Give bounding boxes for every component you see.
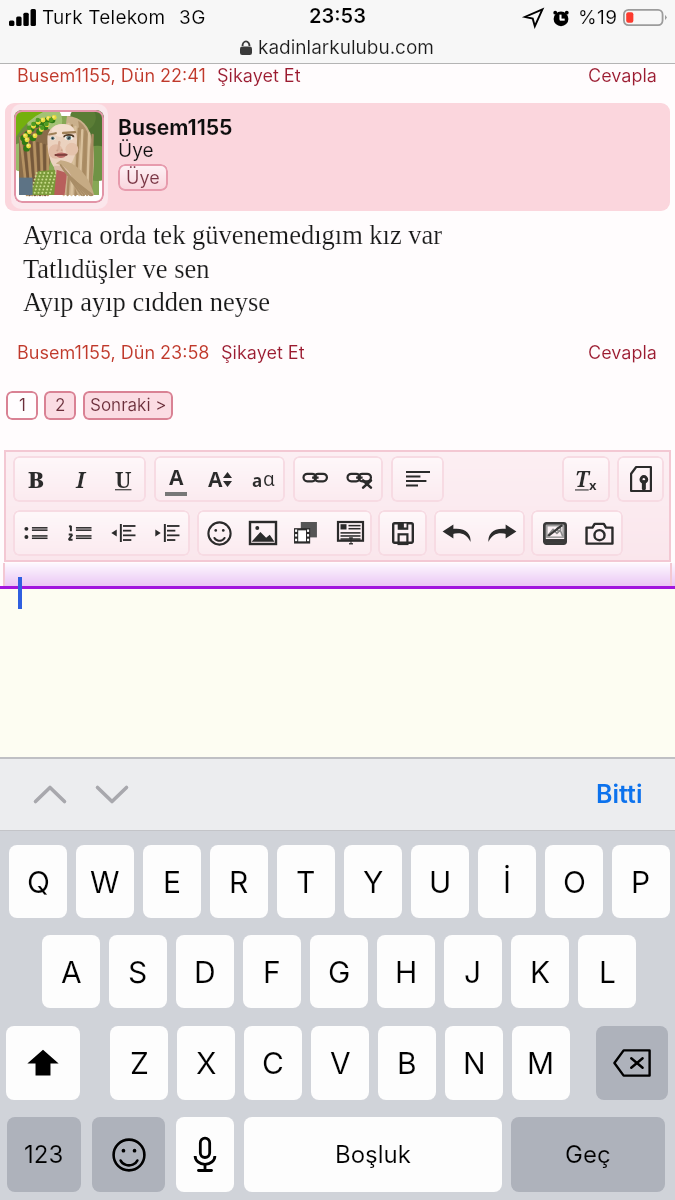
staticText: A <box>208 465 223 494</box>
staticText: V <box>330 1045 351 1081</box>
button[interactable]: D <box>176 935 234 1008</box>
button[interactable]: Shift <box>6 1026 80 1100</box>
button[interactable]: Emoji <box>92 1117 165 1192</box>
button[interactable]: Underline <box>102 457 144 501</box>
button[interactable]: U <box>411 845 469 918</box>
button[interactable]: S <box>109 935 167 1008</box>
button[interactable]: Save <box>382 511 424 555</box>
button[interactable]: E <box>143 845 201 918</box>
button[interactable]: Italic <box>59 457 101 501</box>
button[interactable]: X <box>177 1026 235 1100</box>
button[interactable]: Bullet list <box>15 511 57 555</box>
button[interactable]: L <box>578 935 636 1008</box>
button[interactable]: Undo <box>436 511 478 555</box>
button[interactable]: 123 <box>7 1117 81 1192</box>
staticText: L <box>599 954 616 990</box>
button[interactable]: Busem1155 <box>5 103 670 211</box>
button[interactable]: 2 <box>44 391 76 420</box>
staticText: α <box>263 466 275 492</box>
button[interactable]: Font color <box>155 457 197 501</box>
button[interactable]: Z <box>110 1026 168 1100</box>
staticText: X <box>196 1045 217 1081</box>
button[interactable]: Camera <box>578 511 620 555</box>
button[interactable]: Emoji <box>198 511 240 555</box>
button[interactable]: F <box>243 935 301 1008</box>
staticText: Sonraki > <box>90 395 167 416</box>
button[interactable]: H <box>377 935 435 1008</box>
staticText: İ <box>503 864 512 900</box>
staticText: R <box>229 864 249 900</box>
button[interactable]: Next field <box>87 769 137 819</box>
button[interactable]: K <box>511 935 569 1008</box>
staticText: W <box>90 864 120 900</box>
button[interactable]: Clear formatting <box>565 457 607 501</box>
button[interactable]: Insert link <box>295 457 337 501</box>
button[interactable]: İ <box>478 845 536 918</box>
button[interactable]: 1 <box>6 391 38 420</box>
button[interactable]: Cevapla <box>588 65 657 87</box>
staticText: Ayıp ayıp cıdden neyse <box>23 287 271 316</box>
button[interactable]: A <box>42 935 100 1008</box>
staticText: D <box>194 954 216 990</box>
button[interactable]: Şikayet Et <box>221 342 305 364</box>
button[interactable]: Bitti <box>588 773 651 815</box>
staticText: 23:53 <box>309 4 366 28</box>
button[interactable]: Cevapla <box>588 342 657 364</box>
staticText: Tatlıdüşler ve sen <box>23 254 210 283</box>
button[interactable]: C <box>244 1026 302 1100</box>
button[interactable]: B <box>378 1026 436 1100</box>
button[interactable]: Y <box>344 845 402 918</box>
button[interactable]: T <box>277 845 335 918</box>
button[interactable]: G <box>310 935 368 1008</box>
button[interactable]: Gallery <box>534 511 576 555</box>
button[interactable]: Boşluk <box>244 1117 502 1192</box>
staticText: 2 <box>55 395 66 416</box>
button[interactable]: Şikayet Et <box>217 65 301 87</box>
button[interactable]: Source <box>620 457 662 501</box>
button[interactable]: Busem1155, Dün 22:41 <box>17 65 206 87</box>
button[interactable]: Q <box>9 845 67 918</box>
staticText: E <box>163 864 182 900</box>
staticText: A <box>61 954 82 990</box>
button[interactable]: Video <box>285 511 327 555</box>
button[interactable]: R <box>210 845 268 918</box>
button[interactable]: M <box>512 1026 570 1100</box>
staticText: Y <box>363 864 384 900</box>
button[interactable]: Backspace <box>596 1026 668 1100</box>
staticText: T <box>296 864 316 900</box>
button[interactable]: Align <box>397 457 439 501</box>
button[interactable]: Numbered list <box>59 511 101 555</box>
staticText: Turk Telekom <box>42 6 166 29</box>
button[interactable]: Text case <box>242 457 284 501</box>
button[interactable]: V <box>311 1026 369 1100</box>
button[interactable]: P <box>612 845 670 918</box>
button[interactable]: Remove link <box>339 457 381 501</box>
button[interactable]: Outdent <box>102 511 144 555</box>
button[interactable]: J <box>444 935 502 1008</box>
staticText: A <box>169 463 184 492</box>
button[interactable]: O <box>545 845 603 918</box>
button[interactable]: Redo <box>481 511 523 555</box>
button[interactable]: Previous field <box>25 769 75 819</box>
button[interactable]: Geç <box>511 1117 665 1192</box>
staticText: Busem1155 <box>118 115 233 140</box>
button[interactable]: W <box>76 845 134 918</box>
button[interactable]: Üye <box>118 164 168 191</box>
button[interactable]: Font size <box>199 457 241 501</box>
staticText: N <box>463 1045 486 1081</box>
button[interactable]: Quote <box>329 511 371 555</box>
staticText: B <box>28 464 44 494</box>
button[interactable]: Dictation <box>176 1117 234 1192</box>
staticText: O <box>563 864 586 900</box>
staticText: T <box>575 465 589 494</box>
staticText: Z <box>130 1045 149 1081</box>
button[interactable]: Image <box>242 511 284 555</box>
button[interactable]: Bold <box>15 457 57 501</box>
button[interactable]: Busem1155, Dün 23:58 <box>17 342 210 364</box>
staticText: K <box>530 954 551 990</box>
staticText: M <box>527 1045 555 1081</box>
button[interactable]: N <box>445 1026 503 1100</box>
staticText: Bitti <box>596 779 643 809</box>
button[interactable]: Indent <box>146 511 188 555</box>
button[interactable]: Sonraki > <box>83 391 173 420</box>
